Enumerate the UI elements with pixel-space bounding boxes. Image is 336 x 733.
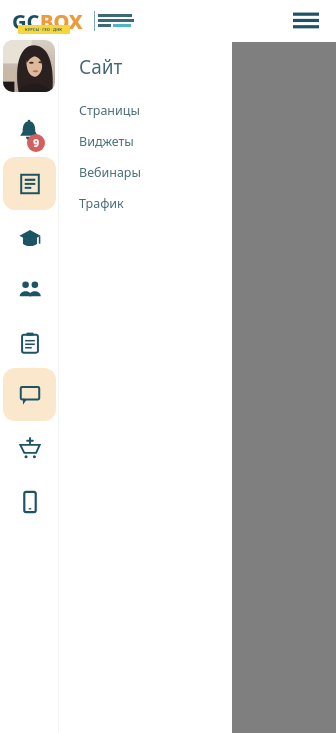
button[interactable]: Вебинары	[79, 157, 219, 188]
button[interactable]: Mobile	[3, 475, 56, 528]
staticText: Вебинары	[79, 164, 141, 181]
button[interactable]: Виджеты	[79, 126, 219, 157]
button[interactable]: Notifications	[3, 114, 55, 158]
staticText: 9	[33, 136, 39, 150]
button[interactable]: Site	[3, 157, 56, 210]
button[interactable]: Orders	[3, 421, 56, 474]
staticText: Виджеты	[79, 133, 134, 150]
staticText: КУРСЫ · ГЕО · ДНК	[25, 27, 63, 32]
button[interactable]: Chat	[3, 368, 56, 421]
staticText: GC	[12, 8, 40, 35]
button[interactable]: Users	[3, 263, 56, 316]
button[interactable]: Страницы	[79, 95, 219, 126]
staticText: Трафик	[79, 195, 124, 212]
staticText: Страницы	[79, 102, 140, 119]
button[interactable]: Tasks	[3, 316, 56, 369]
button[interactable]: Courses	[3, 211, 56, 264]
button[interactable]: Menu	[288, 6, 324, 36]
staticText: BOX	[40, 8, 83, 35]
button[interactable]: GC	[12, 6, 134, 36]
staticText: Сайт	[79, 54, 123, 80]
button[interactable]: Profile	[3, 40, 55, 92]
button[interactable]: Трафик	[79, 188, 219, 219]
